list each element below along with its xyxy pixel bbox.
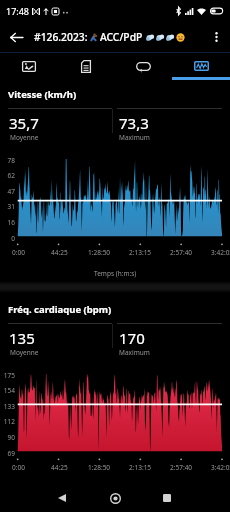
staticText: Fréq. cardiaque (bpm): [8, 303, 112, 316]
staticText: 78: [0, 156, 15, 165]
staticText: #126.2023:: [34, 30, 88, 44]
staticText: 170: [119, 328, 145, 348]
staticText: 154: [0, 386, 15, 395]
staticText: Moyenne: [10, 348, 39, 357]
staticText: 2:57:40: [170, 463, 193, 472]
staticText: Moyenne: [10, 133, 39, 142]
staticText: 0: [0, 234, 15, 243]
staticText: 69: [0, 449, 15, 458]
staticText: 3:42:05: [211, 463, 230, 472]
staticText: 17:48: [6, 5, 30, 17]
staticText: 135: [9, 328, 35, 348]
staticText: 44:25: [51, 248, 68, 257]
button[interactable]: Home: [101, 484, 129, 512]
button[interactable]: Recent apps: [153, 484, 181, 512]
staticText: 175: [0, 371, 15, 380]
button[interactable]: Details: [57, 53, 114, 79]
staticText: 133: [0, 402, 15, 411]
staticText: 62: [0, 171, 15, 180]
staticText: 2:13:15: [129, 463, 152, 472]
staticText: 73,3: [119, 113, 149, 133]
staticText: 112: [0, 417, 15, 426]
staticText: 90: [0, 433, 15, 442]
staticText: 0:00: [12, 248, 25, 257]
staticText: Maximum: [119, 348, 150, 357]
staticText: 0:00: [12, 463, 25, 472]
staticText: 2:13:15: [129, 248, 152, 257]
button[interactable]: Charts: [172, 53, 230, 79]
staticText: Vitesse (km/h): [8, 88, 77, 101]
staticText: 31: [0, 202, 15, 211]
staticText: 16: [0, 218, 15, 227]
staticText: 44:25: [51, 463, 68, 472]
staticText: 1:28:50: [88, 463, 111, 472]
staticText: Temps (h:m:s): [94, 269, 137, 278]
button[interactable]: More options: [203, 24, 229, 50]
button[interactable]: Back: [48, 484, 76, 512]
staticText: 35,7: [9, 113, 39, 133]
staticText: 47: [0, 187, 15, 196]
button[interactable]: Back: [3, 24, 29, 50]
staticText: ACC/PdP: [100, 30, 143, 44]
button[interactable]: Map: [0, 53, 57, 79]
staticText: 3:42:05: [211, 248, 230, 257]
staticText: 2:57:40: [170, 248, 193, 257]
button[interactable]: Laps: [114, 53, 172, 79]
staticText: 1:28:50: [88, 248, 111, 257]
staticText: Maximum: [119, 133, 150, 142]
